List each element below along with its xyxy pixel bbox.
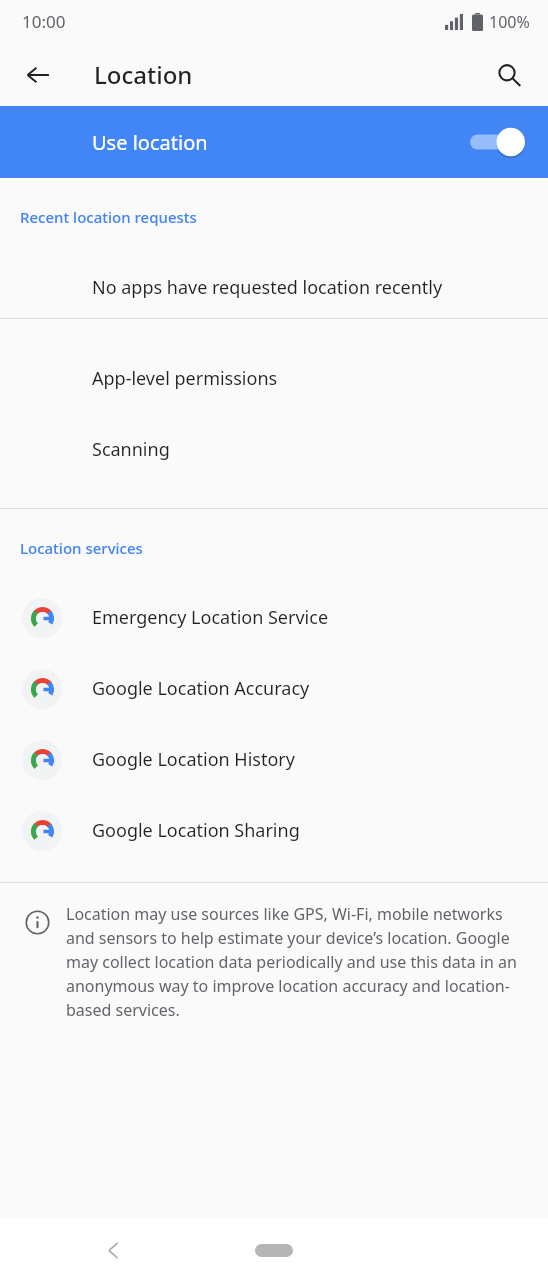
staticText: Use location bbox=[92, 129, 208, 156]
staticText: Recent location requests bbox=[20, 207, 197, 227]
button[interactable]: App-level permissions bbox=[0, 348, 548, 409]
staticText: No apps have requested location recently bbox=[92, 275, 443, 300]
button[interactable]: Google Location Accuracy bbox=[0, 653, 548, 724]
staticText: Google Location Sharing bbox=[92, 818, 300, 843]
button[interactable]: Google Location Sharing bbox=[0, 795, 548, 866]
staticText: Google Location Accuracy bbox=[92, 676, 310, 701]
staticText: Location services bbox=[20, 538, 143, 558]
staticText: Emergency Location Service bbox=[92, 605, 329, 630]
staticText: 10:00 bbox=[22, 10, 66, 33]
button[interactable]: Search bbox=[485, 51, 533, 99]
staticText: App-level permissions bbox=[92, 366, 278, 391]
staticText: Scanning bbox=[92, 437, 170, 462]
button[interactable]: Scanning bbox=[0, 419, 548, 480]
staticText: Google Location History bbox=[92, 747, 295, 772]
button[interactable]: Back bbox=[14, 51, 62, 99]
button[interactable]: Home bbox=[244, 1233, 304, 1267]
button[interactable]: Google Location History bbox=[0, 724, 548, 795]
staticText: 100% bbox=[489, 11, 530, 33]
button[interactable]: No apps have requested location recently bbox=[0, 256, 548, 318]
button[interactable]: Emergency Location Service bbox=[0, 582, 548, 653]
staticText: Location may use sources like GPS, Wi-Fi… bbox=[66, 903, 530, 1021]
button[interactable]: Use location bbox=[0, 106, 548, 178]
button[interactable]: Back bbox=[90, 1227, 136, 1273]
staticText: Location bbox=[94, 58, 193, 91]
